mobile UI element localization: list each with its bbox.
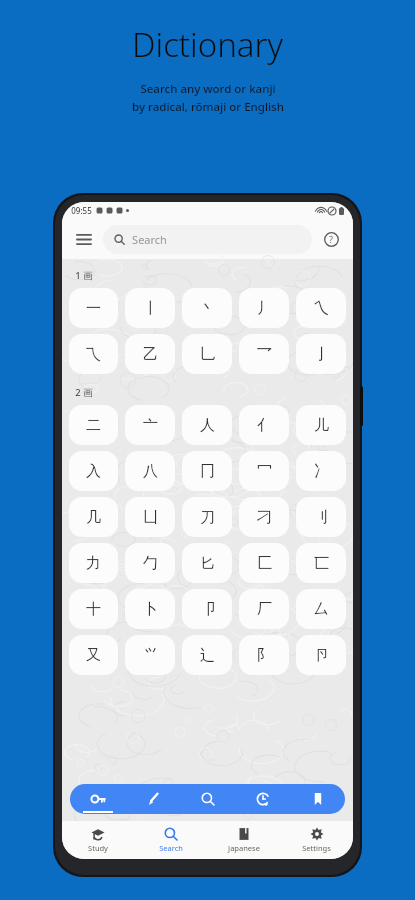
- button[interactable]: Settings: [280, 821, 353, 859]
- button[interactable]: 阝: [239, 635, 289, 675]
- staticText: 八: [143, 462, 158, 481]
- staticText: ⺍: [143, 646, 158, 665]
- staticText: 人: [200, 416, 215, 435]
- button[interactable]: 乙: [125, 334, 175, 374]
- staticText: 辶: [200, 646, 215, 665]
- button[interactable]: 亻: [239, 405, 289, 445]
- staticText: 冖: [257, 462, 272, 481]
- staticText: 冂: [200, 462, 215, 481]
- button[interactable]: 乀: [296, 288, 346, 328]
- button[interactable]: 勹: [125, 543, 175, 583]
- button[interactable]: 辶: [182, 635, 232, 675]
- button[interactable]: 又: [69, 635, 118, 675]
- button[interactable]: 十: [69, 589, 118, 629]
- staticText: 冫: [314, 462, 329, 481]
- button[interactable]: 刀: [182, 497, 232, 537]
- staticText: 乛: [257, 345, 272, 364]
- staticText: 亅: [314, 345, 329, 364]
- staticText: 厂: [257, 600, 272, 619]
- staticText: 亻: [257, 416, 272, 435]
- button[interactable]: 乁: [69, 334, 118, 374]
- button[interactable]: 人: [182, 405, 232, 445]
- button[interactable]: 刁: [239, 497, 289, 537]
- staticText: 刁: [257, 508, 272, 527]
- button[interactable]: 儿: [296, 405, 346, 445]
- staticText: 乁: [86, 345, 101, 364]
- staticText: 09:55: [71, 205, 92, 216]
- staticText: Search: [132, 232, 167, 247]
- staticText: 卩: [200, 600, 215, 619]
- button[interactable]: History: [235, 784, 290, 814]
- staticText: ?: [329, 233, 333, 245]
- staticText: 乙: [143, 345, 158, 364]
- staticText: 乚: [200, 345, 215, 364]
- button[interactable]: 厶: [296, 589, 346, 629]
- button[interactable]: Draw: [125, 784, 180, 814]
- staticText: 刀: [200, 508, 215, 527]
- button[interactable]: Help: [318, 226, 344, 252]
- staticText: Dictionary: [132, 22, 283, 67]
- button[interactable]: 冫: [296, 451, 346, 491]
- staticText: 又: [86, 646, 101, 665]
- button[interactable]: 亠: [125, 405, 175, 445]
- staticText: 丿: [257, 299, 272, 318]
- staticText: Study: [88, 843, 108, 853]
- button[interactable]: Menu: [71, 226, 97, 252]
- staticText: 亠: [143, 416, 158, 435]
- button[interactable]: 亅: [296, 334, 346, 374]
- button[interactable]: 丨: [125, 288, 175, 328]
- button[interactable]: 冂: [182, 451, 232, 491]
- staticText: 勹: [143, 554, 158, 573]
- staticText: 丶: [200, 299, 215, 318]
- staticText: 匕: [200, 554, 215, 573]
- button[interactable]: ⺍: [125, 635, 175, 675]
- button[interactable]: Search: [180, 784, 235, 814]
- button[interactable]: 乚: [182, 334, 232, 374]
- button[interactable]: 凵: [125, 497, 175, 537]
- staticText: Japanese: [228, 843, 260, 853]
- button[interactable]: 厂: [239, 589, 289, 629]
- staticText: 乀: [314, 299, 329, 318]
- button[interactable]: 匕: [182, 543, 232, 583]
- button[interactable]: 二: [69, 405, 118, 445]
- staticText: 一: [86, 299, 101, 318]
- staticText: 1 画: [75, 269, 93, 282]
- button[interactable]: Search: [103, 225, 312, 254]
- button[interactable]: 冖: [239, 451, 289, 491]
- staticText: 儿: [314, 416, 329, 435]
- button[interactable]: 卜: [125, 589, 175, 629]
- staticText: 阝: [257, 646, 272, 665]
- button[interactable]: 几: [69, 497, 118, 537]
- staticText: 2 画: [75, 386, 93, 399]
- button[interactable]: 八: [125, 451, 175, 491]
- staticText: 厶: [314, 600, 329, 619]
- staticText: by radical, rōmaji or English: [132, 99, 284, 115]
- button[interactable]: Bookmarks: [290, 784, 345, 814]
- button[interactable]: Study: [62, 821, 134, 859]
- staticText: 卪: [314, 646, 329, 665]
- staticText: 凵: [143, 508, 158, 527]
- button[interactable]: Radicals: [70, 784, 125, 814]
- button[interactable]: 匸: [296, 543, 346, 583]
- button[interactable]: 丶: [182, 288, 232, 328]
- button[interactable]: Japanese: [207, 821, 280, 859]
- staticText: 匚: [257, 554, 272, 573]
- staticText: 丨: [143, 299, 158, 318]
- button[interactable]: 卩: [182, 589, 232, 629]
- button[interactable]: 乛: [239, 334, 289, 374]
- button[interactable]: 匚: [239, 543, 289, 583]
- button[interactable]: 卪: [296, 635, 346, 675]
- staticText: 十: [86, 600, 101, 619]
- button[interactable]: 入: [69, 451, 118, 491]
- button[interactable]: Search: [134, 821, 207, 859]
- staticText: 二: [86, 416, 101, 435]
- staticText: Search: [159, 843, 183, 853]
- button[interactable]: 一: [69, 288, 118, 328]
- button[interactable]: 丿: [239, 288, 289, 328]
- staticText: 卜: [143, 600, 158, 619]
- staticText: 几: [86, 508, 101, 527]
- button[interactable]: 刂: [296, 497, 346, 537]
- staticText: 刂: [314, 508, 329, 527]
- button[interactable]: 力: [69, 543, 118, 583]
- staticText: 匸: [314, 554, 329, 573]
